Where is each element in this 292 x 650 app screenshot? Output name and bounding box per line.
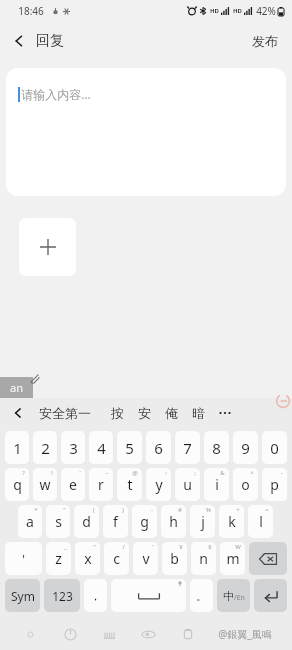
staticText: 18:46 — [18, 4, 44, 18]
staticText: * — [34, 506, 38, 514]
staticText: & — [220, 469, 225, 477]
staticText: c — [113, 549, 120, 568]
staticText: l — [259, 512, 263, 531]
button[interactable]: Power — [50, 628, 90, 641]
button[interactable]: a — [18, 505, 42, 538]
staticText: = — [265, 506, 269, 514]
button[interactable]: y — [146, 468, 171, 501]
button[interactable]: 5 — [117, 431, 142, 464]
staticText: x — [84, 549, 92, 568]
button[interactable]: v — [133, 542, 158, 575]
staticText: 9 — [241, 438, 250, 458]
staticText: t — [127, 475, 133, 494]
button[interactable]: 8 — [204, 431, 229, 464]
button[interactable]: Home — [129, 628, 168, 641]
staticText: 俺 — [165, 405, 178, 421]
other: Backspace — [259, 553, 277, 565]
staticText: 3 — [69, 438, 78, 458]
button[interactable]: 123 — [44, 579, 80, 612]
button[interactable]: 安全第一 — [34, 400, 96, 426]
button[interactable]: 中 — [217, 579, 250, 612]
staticText: _ — [64, 543, 67, 551]
button[interactable]: t — [117, 468, 142, 501]
staticText: 。 — [196, 589, 207, 603]
button[interactable]: j — [190, 505, 215, 538]
button[interactable]: Recents — [168, 628, 207, 640]
button[interactable]: p — [262, 468, 287, 501]
button[interactable]: b — [162, 542, 187, 575]
staticText: Sym — [11, 588, 35, 604]
button[interactable]: w — [33, 468, 57, 501]
staticText: " — [93, 543, 96, 551]
staticText: 42% — [256, 4, 276, 18]
button[interactable]: 0 — [262, 431, 287, 464]
button[interactable]: h — [161, 505, 186, 538]
staticText: 发布 — [252, 33, 278, 49]
staticText: d — [82, 512, 91, 531]
button[interactable]: f — [103, 505, 128, 538]
button[interactable]: i — [204, 468, 229, 501]
button[interactable]: k — [219, 505, 244, 538]
button[interactable]: Previous — [0, 401, 34, 425]
button[interactable]: 1 — [5, 431, 29, 464]
button[interactable]: o — [233, 468, 258, 501]
button[interactable]: Space — [111, 579, 186, 612]
other: Back — [12, 34, 26, 48]
button[interactable]: 9 — [233, 431, 258, 464]
button[interactable]: 6 — [146, 431, 171, 464]
other: Power — [64, 628, 77, 641]
staticText: m — [226, 549, 240, 568]
button[interactable]: z — [46, 542, 71, 575]
staticText: ， — [90, 589, 101, 603]
staticText: j — [201, 512, 205, 531]
button[interactable]: More — [212, 406, 238, 420]
button[interactable]: Enter — [254, 579, 287, 612]
staticText: @銀翼_風鳴 — [218, 627, 272, 641]
button[interactable]: 按 — [104, 400, 131, 426]
staticText: / — [122, 543, 125, 551]
button[interactable]: ， — [84, 579, 107, 612]
button[interactable]: 俺 — [158, 400, 185, 426]
button[interactable]: 2 — [33, 431, 57, 464]
button[interactable]: 安 — [131, 400, 158, 426]
button[interactable]: Backspace — [249, 542, 287, 575]
staticText: e — [69, 475, 77, 494]
staticText: @ — [132, 469, 138, 477]
other: Recents — [182, 628, 194, 640]
staticText: p — [270, 475, 279, 494]
button[interactable]: an — [0, 377, 33, 398]
button[interactable]: 3 — [61, 431, 85, 464]
button[interactable]: m — [220, 542, 245, 575]
button[interactable]: d — [74, 505, 99, 538]
button[interactable]: r — [89, 468, 113, 501]
button[interactable]: 请输入内容... — [6, 68, 286, 196]
button[interactable]: l — [248, 505, 273, 538]
staticText: ^ — [250, 469, 254, 477]
button[interactable]: e — [61, 468, 85, 501]
button[interactable]: n — [191, 542, 216, 575]
staticText: g — [140, 512, 149, 531]
button[interactable]: c — [104, 542, 129, 575]
button[interactable]: Keyboard — [90, 628, 129, 641]
button[interactable]: 。 — [190, 579, 213, 612]
button[interactable]: g — [132, 505, 157, 538]
button[interactable]: 4 — [89, 431, 113, 464]
button[interactable]: s — [46, 505, 70, 538]
button[interactable]: Back — [0, 26, 76, 56]
button[interactable]: 发布 — [238, 25, 292, 57]
staticText: - — [281, 469, 283, 477]
staticText: : — [165, 469, 167, 477]
staticText: 安 — [138, 405, 151, 421]
button[interactable]: ' — [5, 542, 42, 575]
button[interactable]: q — [5, 468, 29, 501]
staticText: ? — [22, 469, 25, 477]
button[interactable]: 7 — [175, 431, 200, 464]
staticText: 按 — [111, 405, 124, 421]
button[interactable]: Sym — [5, 579, 40, 612]
staticText: y — [155, 475, 163, 494]
staticText: ( — [93, 506, 95, 514]
button[interactable]: 暗 — [185, 400, 212, 426]
button[interactable]: Add image — [19, 218, 76, 276]
button[interactable]: u — [175, 468, 200, 501]
button[interactable]: x — [75, 542, 100, 575]
